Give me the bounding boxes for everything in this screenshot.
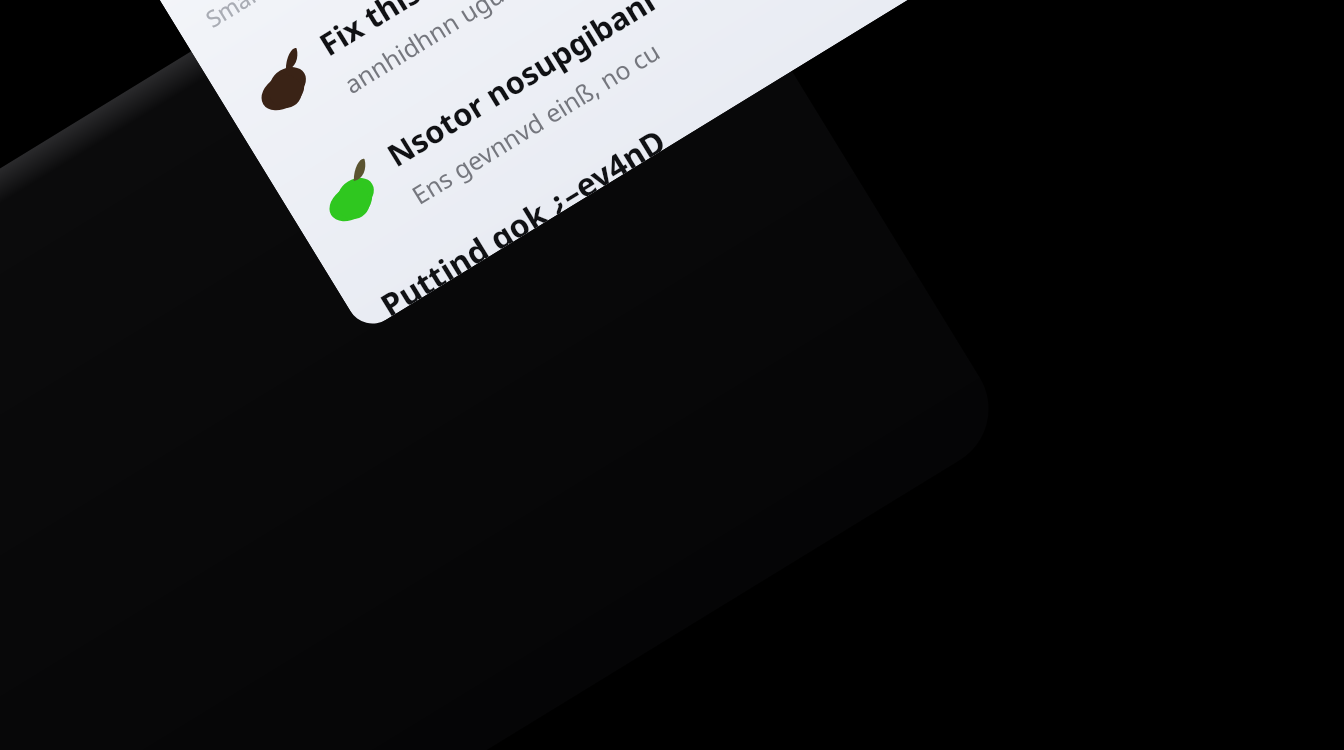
staticText: Puttind gok ¿–ey4nD [372,119,668,318]
other: Green apple [307,150,395,238]
staticText: Ens gevnnvd einß, no cu [405,34,666,211]
other: Apple [240,39,328,127]
staticText: Fix this are fmt and get to info [311,0,733,65]
staticText: Nsotor nosupgibanl Yore bore [379,0,795,176]
button[interactable]: Green apple [279,0,977,276]
button[interactable]: Apple [211,0,909,165]
staticText: annhidhnn uguslUelelevel no [337,0,648,101]
staticText: Small details [199,0,332,34]
